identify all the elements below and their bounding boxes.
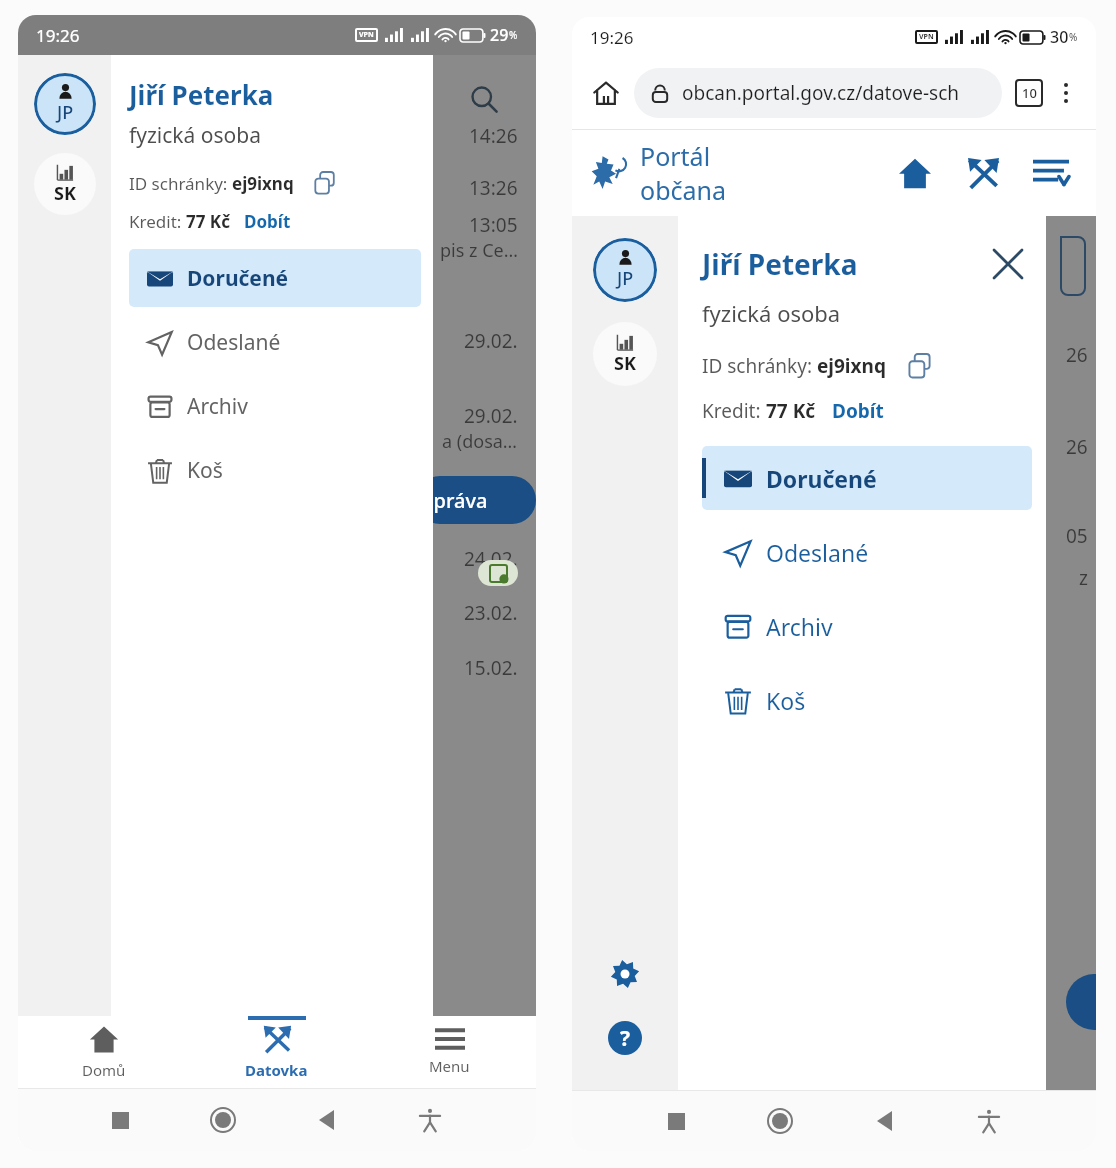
staticText: 29.02. [464,403,518,429]
staticText: VPN [359,30,374,40]
staticText: 29.02. [464,328,518,354]
staticText: 77 Kč [186,210,230,233]
staticText: 26 [1066,434,1088,460]
staticText: Doručené [766,463,877,494]
staticText: % [509,28,518,42]
button[interactable]: Datovka [190,1016,363,1088]
staticText: Dobít [244,210,291,233]
staticText: % [1069,30,1078,44]
staticText: Kredit: [129,210,186,233]
button[interactable]: Dobít [832,398,884,424]
staticText: a (dosa… [442,429,518,454]
button[interactable]: Help [599,1012,651,1064]
button[interactable]: Copy ID [904,350,936,382]
staticText: Domů [82,1060,126,1080]
button[interactable]: Koš [129,441,421,499]
staticText: ej9ixnq [232,172,294,195]
button[interactable]: Profile JP [593,238,657,302]
button[interactable]: Odeslané [129,313,421,371]
button[interactable]: Tabs: 10 [1010,74,1048,112]
button[interactable]: Doručené [702,446,1032,510]
staticText: Koš [766,685,806,716]
staticText: 28.02. [464,471,518,497]
staticText: 10 [1022,84,1037,102]
staticText: zpráva [424,487,488,514]
staticText: Archiv [766,611,833,642]
button[interactable]: Doručené [129,249,421,307]
staticText: VPN [919,32,934,42]
staticText: fyzická osoba [702,298,841,328]
staticText: Dobít [832,398,884,424]
staticText: pis z Ce… [440,238,518,263]
button[interactable]: Koš [702,668,1032,732]
staticText: 13:26 [469,175,518,201]
staticText: 13:05 [469,212,518,238]
staticText: Datovka [245,1060,308,1080]
staticText: 26 [1066,342,1088,368]
staticText: Doručené [187,264,289,293]
staticText: JP [57,100,74,125]
staticText: 05 [1066,523,1088,549]
staticText: ? [620,1024,631,1053]
staticText: 77 Kč [766,398,816,424]
button[interactable]: Odeslané [702,520,1032,584]
staticText: Koš [187,456,223,485]
button[interactable]: Dobít [244,210,291,233]
button[interactable]: Menu [363,1016,536,1088]
staticText: JP [617,266,634,291]
staticText: ID schránky: [129,172,232,195]
staticText: 23.02. [464,600,518,626]
button[interactable]: Settings [599,948,651,1000]
button[interactable]: Menu [1024,146,1078,200]
button[interactable]: Copy ID [310,168,340,198]
staticText: 14:26 [469,123,518,149]
button[interactable]: Home [888,146,942,200]
button[interactable]: Home [584,71,628,115]
staticText: Portál [640,139,711,173]
staticText: SK [54,181,76,206]
staticText: občana [640,173,727,207]
button[interactable]: Archiv [702,594,1032,658]
staticText: 19:26 [590,26,634,49]
button[interactable]: Domů [18,1016,190,1088]
staticText: 29 [490,24,509,46]
staticText: 30 [1050,26,1069,48]
button[interactable]: Company SK [593,322,657,386]
staticText: Kredit: [702,398,766,424]
button[interactable]: Search [462,77,506,121]
staticText: Odeslané [766,537,869,568]
staticText: obcan.portal.gov.cz/datove-sch [682,80,960,106]
staticText: Jiří Peterka [129,77,274,112]
button[interactable]: Datovka [956,146,1010,200]
button[interactable]: Profile JP [34,73,96,135]
staticText: ID schránky: [702,353,817,379]
button[interactable]: obcan.portal.gov.cz/datove-sch [634,68,1002,118]
staticText: 15.02. [464,655,518,681]
staticText: z [1079,565,1088,591]
button[interactable]: Company SK [34,153,96,215]
button[interactable]: More options [1048,75,1084,111]
staticText: 19:26 [36,24,80,47]
staticText: Jiří Peterka [702,245,858,283]
staticText: 24.02. [464,546,518,572]
staticText: fyzická osoba [129,121,261,150]
staticText: ej9ixnq [817,353,886,379]
staticText: Archiv [187,392,248,421]
button[interactable]: Archiv [129,377,421,435]
staticText: Menu [429,1056,470,1076]
staticText: Odeslané [187,328,281,357]
button[interactable]: Close [984,240,1032,288]
staticText: SK [614,351,636,376]
